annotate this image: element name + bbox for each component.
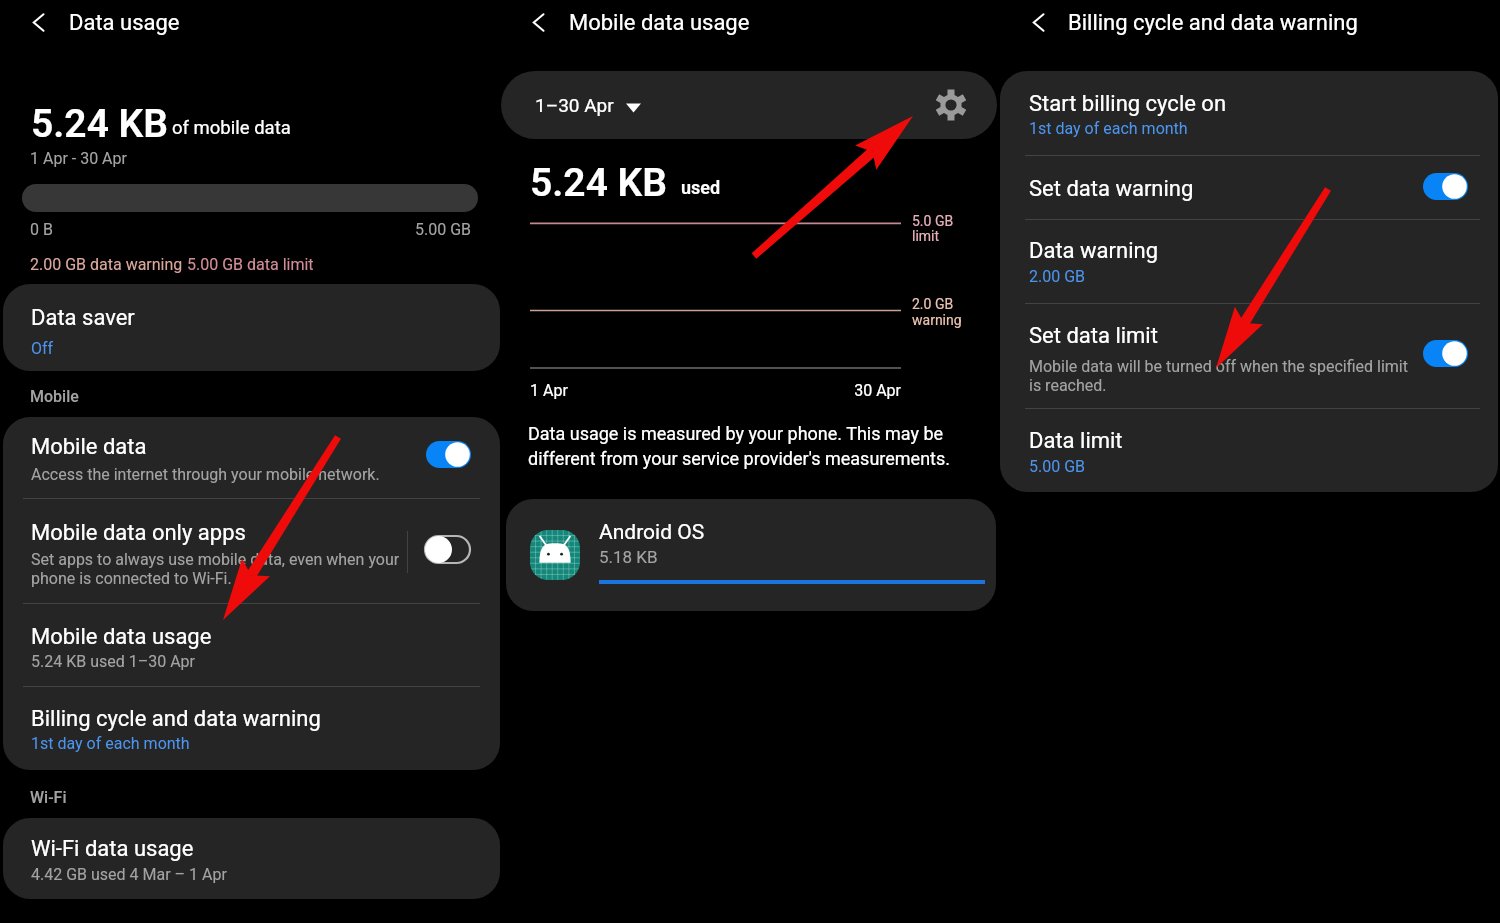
staticText: Set data limit xyxy=(1029,323,1158,349)
button[interactable]: Back xyxy=(22,6,54,38)
staticText: warning xyxy=(912,312,962,328)
staticText: Wi-Fi xyxy=(30,788,67,807)
staticText: Data usage is measured by your phone. Th… xyxy=(528,423,968,470)
button[interactable]: Data limit xyxy=(1000,408,1498,492)
staticText: 1 Apr - 30 Apr xyxy=(30,149,127,168)
button[interactable]: Set data warning xyxy=(1000,155,1498,219)
staticText: Data usage xyxy=(69,10,180,36)
staticText: Access the internet through your mobile … xyxy=(31,465,380,484)
staticText: Data warning xyxy=(1029,238,1158,264)
button[interactable]: Start billing cycle on xyxy=(1000,71,1498,155)
staticText: Android OS xyxy=(599,520,705,545)
button[interactable]: Data saver xyxy=(3,284,500,371)
staticText: Mobile data usage xyxy=(31,624,212,650)
staticText: 5.24 KB xyxy=(31,101,169,147)
staticText: used xyxy=(681,177,721,198)
button[interactable]: Off xyxy=(425,536,470,563)
button[interactable]: Mobile data only apps xyxy=(3,498,500,603)
staticText: 2.00 GB xyxy=(1029,267,1086,286)
staticText: Start billing cycle on xyxy=(1029,91,1227,117)
staticText: 1st day of each month xyxy=(31,734,190,753)
button[interactable]: Android OS xyxy=(506,499,996,611)
staticText: Mobile xyxy=(30,387,79,406)
staticText: 1–30 Apr xyxy=(535,94,614,116)
button[interactable]: On xyxy=(1423,173,1468,200)
staticText: 5.18 KB xyxy=(599,547,658,567)
staticText: Mobile data xyxy=(31,434,147,460)
button[interactable]: On xyxy=(1423,340,1468,367)
button[interactable]: Wi-Fi data usage xyxy=(3,818,500,899)
staticText: 5.24 KB used 1–30 Apr xyxy=(31,652,195,671)
staticText: 5.00 GB xyxy=(1029,457,1086,476)
staticText: 2.0 GB xyxy=(912,296,954,312)
button[interactable]: 1–30 Apr xyxy=(501,71,997,139)
staticText: Wi-Fi data usage xyxy=(31,836,194,862)
button[interactable]: Mobile data usage xyxy=(3,603,500,686)
staticText: 4.42 GB used 4 Mar – 1 Apr xyxy=(31,865,227,884)
button[interactable]: Mobile data xyxy=(3,417,500,498)
staticText: Mobile data will be turned off when the … xyxy=(1029,357,1417,395)
staticText: Off xyxy=(31,339,54,358)
button[interactable]: Settings xyxy=(931,85,971,125)
staticText: 5.24 KB xyxy=(530,160,668,206)
button[interactable]: On xyxy=(426,441,471,468)
staticText: Set apps to always use mobile data, even… xyxy=(31,550,407,588)
staticText: 5.00 GB data limit xyxy=(187,255,314,274)
staticText: 5.0 GB xyxy=(912,213,954,229)
staticText: Data limit xyxy=(1029,428,1123,454)
staticText: 5.00 GB xyxy=(300,220,471,239)
button[interactable]: Set data limit xyxy=(1000,303,1498,408)
staticText: 30 Apr xyxy=(750,381,901,400)
staticText: Set data warning xyxy=(1029,176,1194,202)
staticText: Billing cycle and data warning xyxy=(31,706,321,732)
staticText: of mobile data xyxy=(172,117,291,139)
staticText: Billing cycle and data warning xyxy=(1068,10,1358,36)
staticText: Data saver xyxy=(31,305,135,331)
button[interactable]: Billing cycle and data warning xyxy=(3,686,500,770)
button[interactable]: Back xyxy=(1022,6,1054,38)
staticText: Mobile data usage xyxy=(569,10,750,36)
staticText: 1st day of each month xyxy=(1029,119,1188,138)
staticText: limit xyxy=(912,228,940,244)
button[interactable]: Data warning xyxy=(1000,219,1498,303)
button[interactable]: Back xyxy=(522,6,554,38)
staticText: 1 Apr xyxy=(530,381,568,400)
staticText: 2.00 GB data warning xyxy=(30,255,183,274)
staticText: 0 B xyxy=(30,220,53,239)
staticText: Mobile data only apps xyxy=(31,520,246,546)
